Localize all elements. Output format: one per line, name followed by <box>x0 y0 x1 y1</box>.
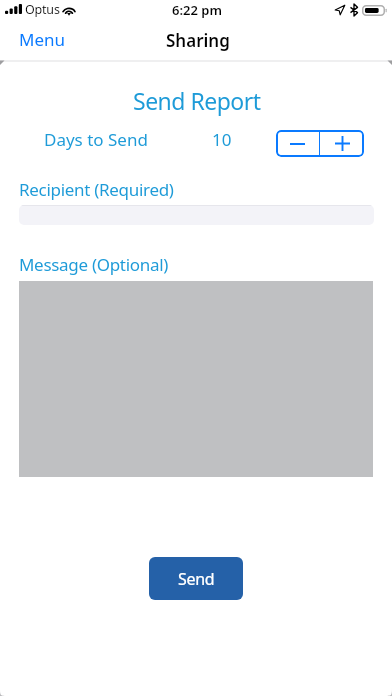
staticText: Send <box>178 568 215 590</box>
staticText: 10 <box>212 128 232 151</box>
staticText: Message (Optional) <box>19 253 169 276</box>
staticText: Sharing <box>166 29 230 52</box>
staticText: Optus <box>25 1 60 18</box>
staticText: Recipient (Required) <box>19 178 174 201</box>
staticText: Days to Send <box>44 128 148 151</box>
staticText: Menu <box>19 28 66 51</box>
button[interactable]: Increase days <box>320 130 364 157</box>
button[interactable]: Menu <box>8 22 77 57</box>
staticText: Send Report <box>133 85 261 116</box>
button[interactable]: Decrease days <box>276 130 319 157</box>
button[interactable]: Send <box>149 557 243 600</box>
staticText: 6:22 pm <box>172 1 222 19</box>
